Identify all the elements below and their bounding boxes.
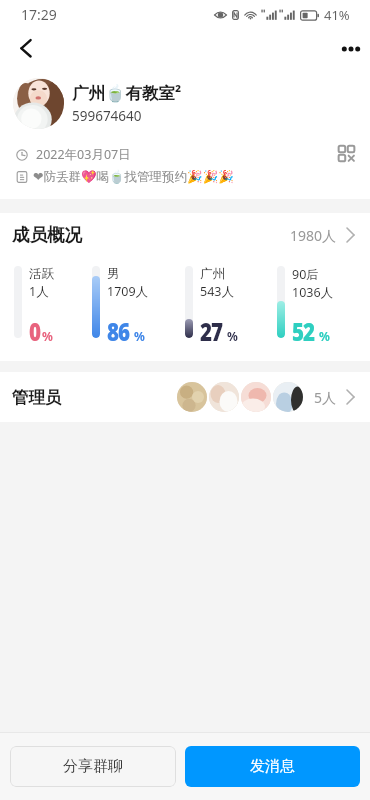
staticText: 活跃 xyxy=(29,266,54,282)
staticText: % xyxy=(319,328,330,344)
staticText: 27 xyxy=(200,315,223,348)
staticText: 0 xyxy=(29,315,41,348)
staticText: ❤️防丢群💖喝🍵找管理预约🎉🎉🎉 xyxy=(33,169,234,185)
button[interactable]: 成员概况 xyxy=(0,213,370,257)
staticText: 男 xyxy=(107,266,120,282)
staticText: % xyxy=(134,328,145,344)
staticText: 发消息 xyxy=(250,757,295,776)
staticText: 599674640 xyxy=(72,107,142,125)
staticText: 5人 xyxy=(314,388,337,407)
button[interactable]: More options xyxy=(335,32,367,64)
staticText: 86 xyxy=(107,315,130,348)
staticText: 管理员 xyxy=(12,387,62,408)
staticText: 543人 xyxy=(200,283,234,300)
staticText: 广州🍵有教室² xyxy=(72,81,182,104)
staticText: 17:29 xyxy=(21,5,57,24)
button[interactable]: Group QR code xyxy=(338,145,355,162)
staticText: 2022年03月07日 xyxy=(36,146,131,163)
staticText: 成员概况 xyxy=(12,224,82,246)
staticText: 52 xyxy=(292,315,315,348)
staticText: 41% xyxy=(324,6,350,24)
staticText: % xyxy=(227,328,238,344)
staticText: 1709人 xyxy=(107,283,149,300)
staticText: 分享群聊 xyxy=(63,757,123,776)
staticText: 1人 xyxy=(29,283,49,300)
button[interactable]: 分享群聊 xyxy=(10,746,176,787)
button[interactable]: Back xyxy=(9,32,41,64)
button[interactable]: 发消息 xyxy=(185,746,360,787)
staticText: 广州 xyxy=(200,266,225,282)
staticText: 90后 xyxy=(292,266,319,283)
staticText: 1980人 xyxy=(290,226,337,245)
staticText: 1036人 xyxy=(292,284,334,301)
button[interactable]: 管理员 xyxy=(0,372,370,422)
staticText: % xyxy=(42,328,53,344)
